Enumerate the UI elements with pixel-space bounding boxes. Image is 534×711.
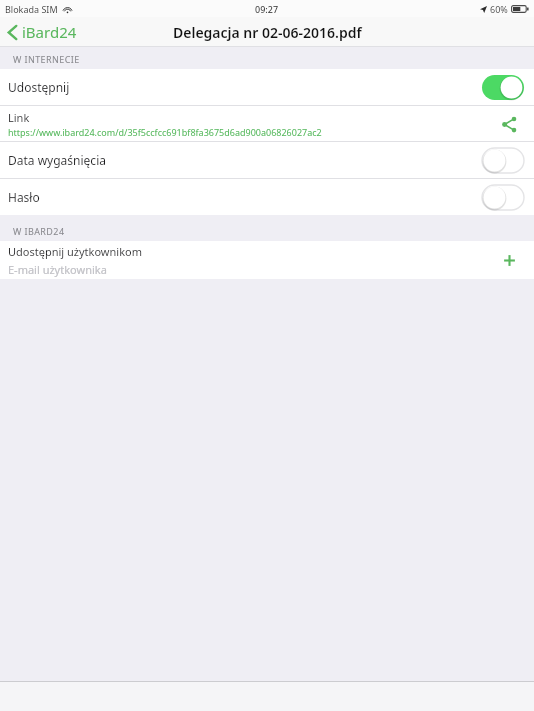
staticText: Delegacja nr 02-06-2016.pdf bbox=[173, 23, 362, 42]
staticText: 60% bbox=[490, 3, 508, 15]
staticText: W INTERNECIE bbox=[13, 53, 80, 65]
staticText: Data wygaśnięcia bbox=[8, 152, 482, 168]
staticText: E-mail użytkownika bbox=[8, 262, 107, 277]
staticText: Udostępnij użytkownikom bbox=[8, 244, 142, 259]
staticText: W IBARD24 bbox=[13, 225, 65, 237]
staticText: https://www.ibard24.com/d/35f5ccfcc691bf… bbox=[8, 126, 322, 138]
button[interactable]: Link bbox=[0, 106, 534, 141]
button[interactable]: Share link bbox=[496, 111, 522, 137]
button[interactable]: iBard24 bbox=[0, 18, 85, 46]
button[interactable]: Udostępnij bbox=[0, 69, 534, 105]
staticText: Udostępnij bbox=[8, 79, 482, 95]
button[interactable]: Hasło bbox=[0, 179, 534, 215]
staticText: iBard24 bbox=[22, 22, 77, 42]
button[interactable]: Udostępnij użytkownikom bbox=[0, 241, 534, 279]
button[interactable]: Data wygaśnięcia bbox=[0, 142, 534, 178]
staticText: Hasło bbox=[8, 189, 482, 205]
staticText: Blokada SIM bbox=[5, 3, 58, 15]
button[interactable]: Add user bbox=[496, 247, 522, 273]
staticText: 09:27 bbox=[255, 3, 279, 15]
staticText: Link bbox=[8, 110, 30, 125]
